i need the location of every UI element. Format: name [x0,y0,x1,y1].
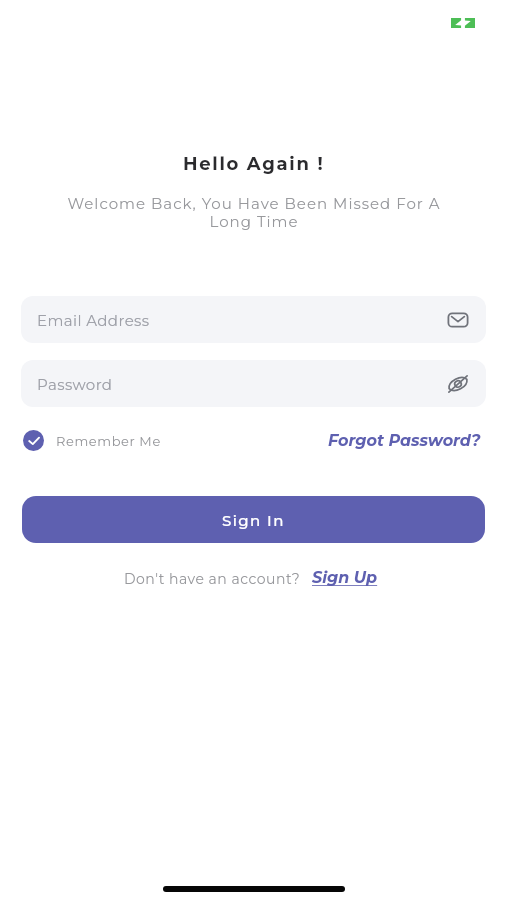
staticText: Hello Again ! [183,153,325,175]
staticText: Welcome Back, You Have Been Missed For A… [59,194,449,231]
button[interactable]: Remember Me [23,430,161,451]
other: Screen cast [451,18,475,28]
button[interactable]: Forgot Password? [328,431,481,451]
staticText: Remember Me [56,433,161,449]
other: Email [446,308,470,332]
button[interactable]: Email Address [21,296,486,343]
button[interactable]: Password [21,360,486,407]
staticText: Sign In [222,511,285,529]
button[interactable]: Sign Up [312,568,378,588]
staticText: Password [37,375,113,393]
other: Show password [446,372,470,396]
staticText: Don't have an account? [124,570,301,587]
button[interactable]: Sign In [22,496,485,543]
staticText: Email Address [37,311,150,329]
